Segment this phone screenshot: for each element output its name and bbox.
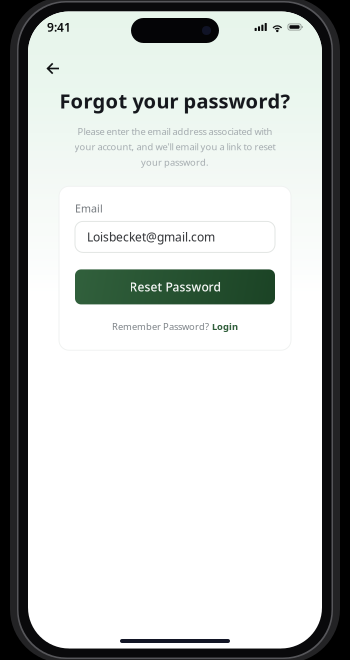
staticText: Please enter the email address associate… xyxy=(77,125,272,137)
staticText: your account, and we'll email you a link… xyxy=(74,140,275,153)
staticText: Remember Password? xyxy=(112,320,209,333)
staticText: Forgot your password? xyxy=(59,87,290,114)
staticText: Login xyxy=(212,320,238,333)
staticText: 9:41 xyxy=(47,19,71,35)
button[interactable]: Back xyxy=(46,53,80,83)
button[interactable]: Remember Password? xyxy=(75,316,275,336)
button[interactable]: Reset Password xyxy=(75,269,275,304)
staticText: Loisbecket@gmail.com xyxy=(87,229,215,245)
staticText: Email xyxy=(75,201,103,215)
staticText: Reset Password xyxy=(129,279,220,295)
staticText: your password. xyxy=(141,156,209,168)
